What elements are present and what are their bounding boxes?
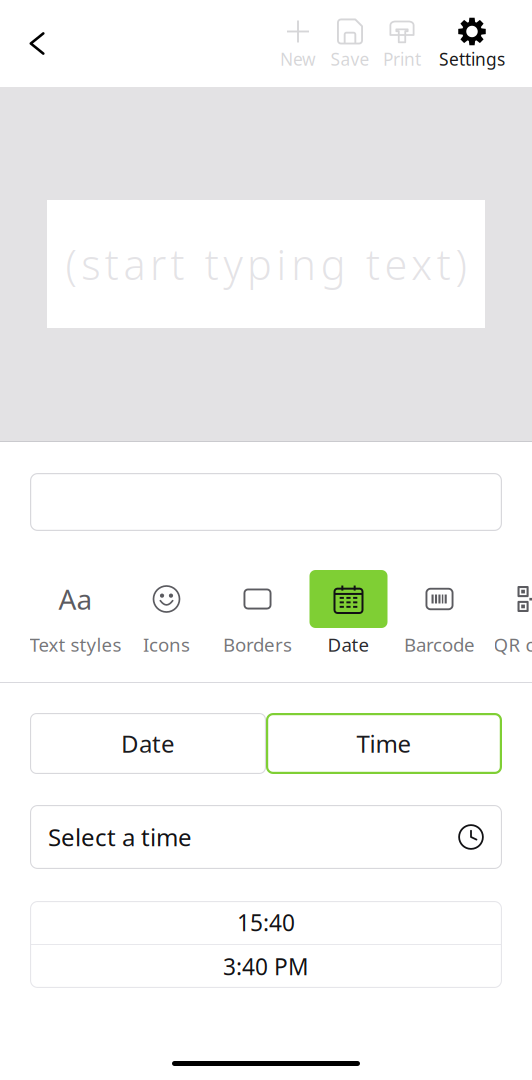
- staticText: 15:40: [237, 907, 295, 937]
- staticText: 3:40 PM: [223, 951, 309, 981]
- staticText: Settings: [439, 47, 505, 70]
- staticText: Text styles: [29, 632, 121, 657]
- staticText: Borders: [223, 632, 292, 657]
- staticText: Icons: [143, 632, 190, 657]
- button[interactable]: 3:40 PM: [30, 945, 502, 988]
- button[interactable]: Icons: [121, 570, 212, 657]
- button[interactable]: Date: [303, 570, 394, 657]
- button[interactable]: Barcode: [394, 570, 485, 657]
- staticText: New: [280, 47, 316, 70]
- button[interactable]: Save: [324, 15, 376, 71]
- button[interactable]: Settings: [428, 15, 516, 71]
- button[interactable]: Select a time: [30, 805, 502, 869]
- staticText: Save: [330, 47, 369, 70]
- staticText: Date: [121, 728, 175, 759]
- staticText: Print: [383, 47, 421, 70]
- button[interactable]: QR code: [485, 570, 532, 657]
- button[interactable]: Print: [376, 15, 428, 71]
- button[interactable]: New: [272, 15, 324, 71]
- staticText: Barcode: [404, 632, 475, 657]
- button[interactable]: Time: [266, 713, 502, 774]
- staticText: Aa: [58, 580, 92, 618]
- button[interactable]: 15:40: [30, 901, 502, 944]
- staticText: Select a time: [48, 821, 192, 853]
- button[interactable]: Date: [30, 713, 266, 774]
- staticText: (start typing text): [66, 237, 466, 291]
- staticText: QR code: [493, 632, 532, 657]
- staticText: Date: [327, 632, 369, 657]
- button[interactable]: Aa: [30, 570, 121, 657]
- button[interactable]: Back: [0, 19, 64, 67]
- button[interactable]: Borders: [212, 570, 303, 657]
- staticText: Time: [356, 728, 411, 759]
